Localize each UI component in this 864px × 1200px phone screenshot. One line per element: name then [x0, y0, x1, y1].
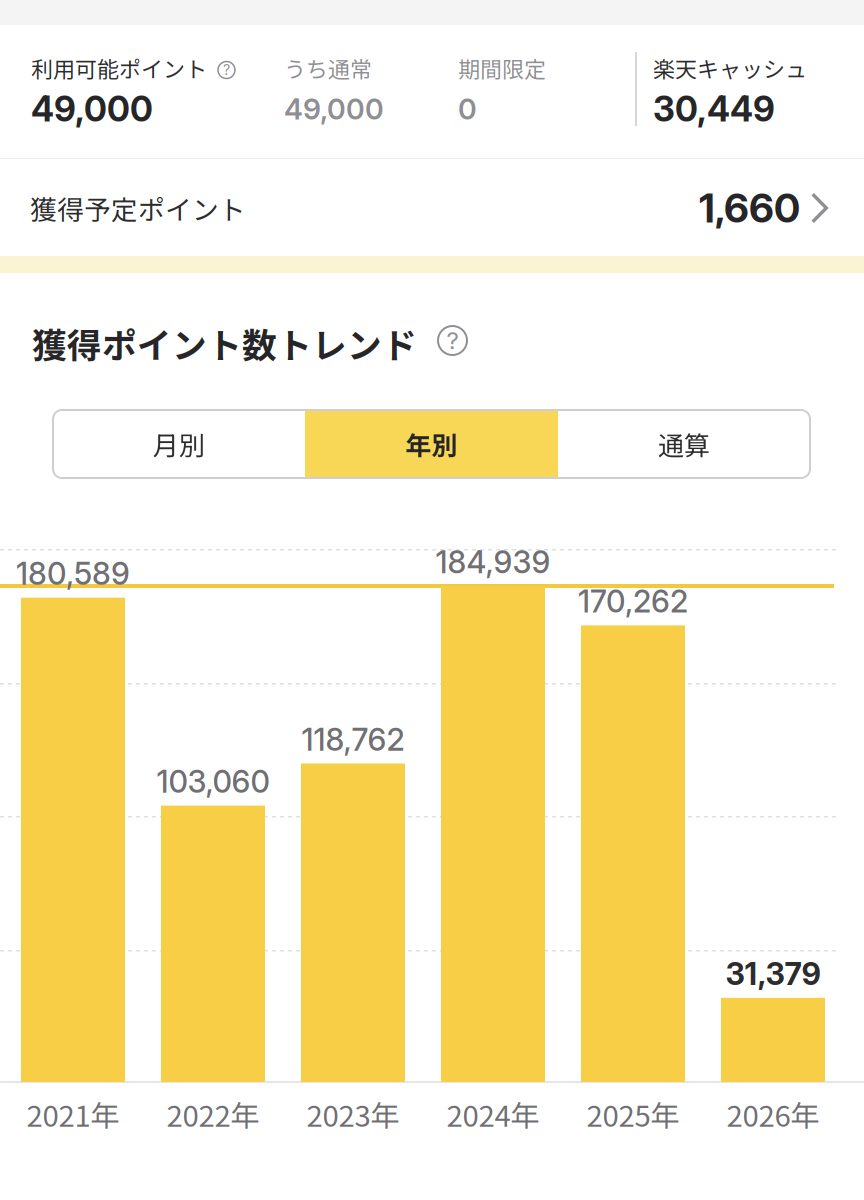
staticText: 30,449	[653, 88, 775, 130]
staticText: 170,262	[578, 583, 688, 620]
staticText: 118,762	[301, 721, 404, 758]
staticText: 2023年	[306, 1093, 399, 1135]
staticText: ?	[223, 61, 230, 78]
staticText: 獲得ポイント数トレンド	[32, 318, 417, 368]
button[interactable]: 通算	[558, 410, 810, 478]
staticText: 2021年	[26, 1093, 119, 1135]
staticText: ?	[446, 326, 458, 355]
staticText: 利用可能ポイント	[31, 52, 207, 84]
staticText: 獲得予定ポイント	[30, 189, 246, 227]
staticText: うち通常	[284, 52, 372, 84]
staticText: 2022年	[166, 1093, 259, 1135]
button[interactable]: 年別	[305, 410, 558, 478]
staticText: 2025年	[586, 1093, 679, 1135]
staticText: 楽天キャッシュ	[653, 52, 807, 84]
staticText: 31,379	[725, 955, 820, 992]
staticText: 年別	[405, 425, 457, 463]
staticText: 103,060	[156, 763, 269, 800]
staticText: 49,000	[284, 92, 384, 126]
staticText: 0	[458, 92, 477, 126]
staticText: 49,000	[31, 88, 153, 130]
staticText: 期間限定	[458, 52, 546, 84]
staticText: 184,939	[435, 543, 550, 580]
staticText: 2026年	[726, 1093, 819, 1135]
button[interactable]: 月別	[53, 410, 305, 478]
button[interactable]: 獲得予定ポイント	[0, 159, 864, 257]
staticText: 1,660	[699, 184, 800, 232]
staticText: 2024年	[446, 1093, 539, 1135]
staticText: 通算	[658, 425, 710, 463]
staticText: 180,589	[16, 555, 130, 592]
staticText: 月別	[153, 425, 205, 463]
